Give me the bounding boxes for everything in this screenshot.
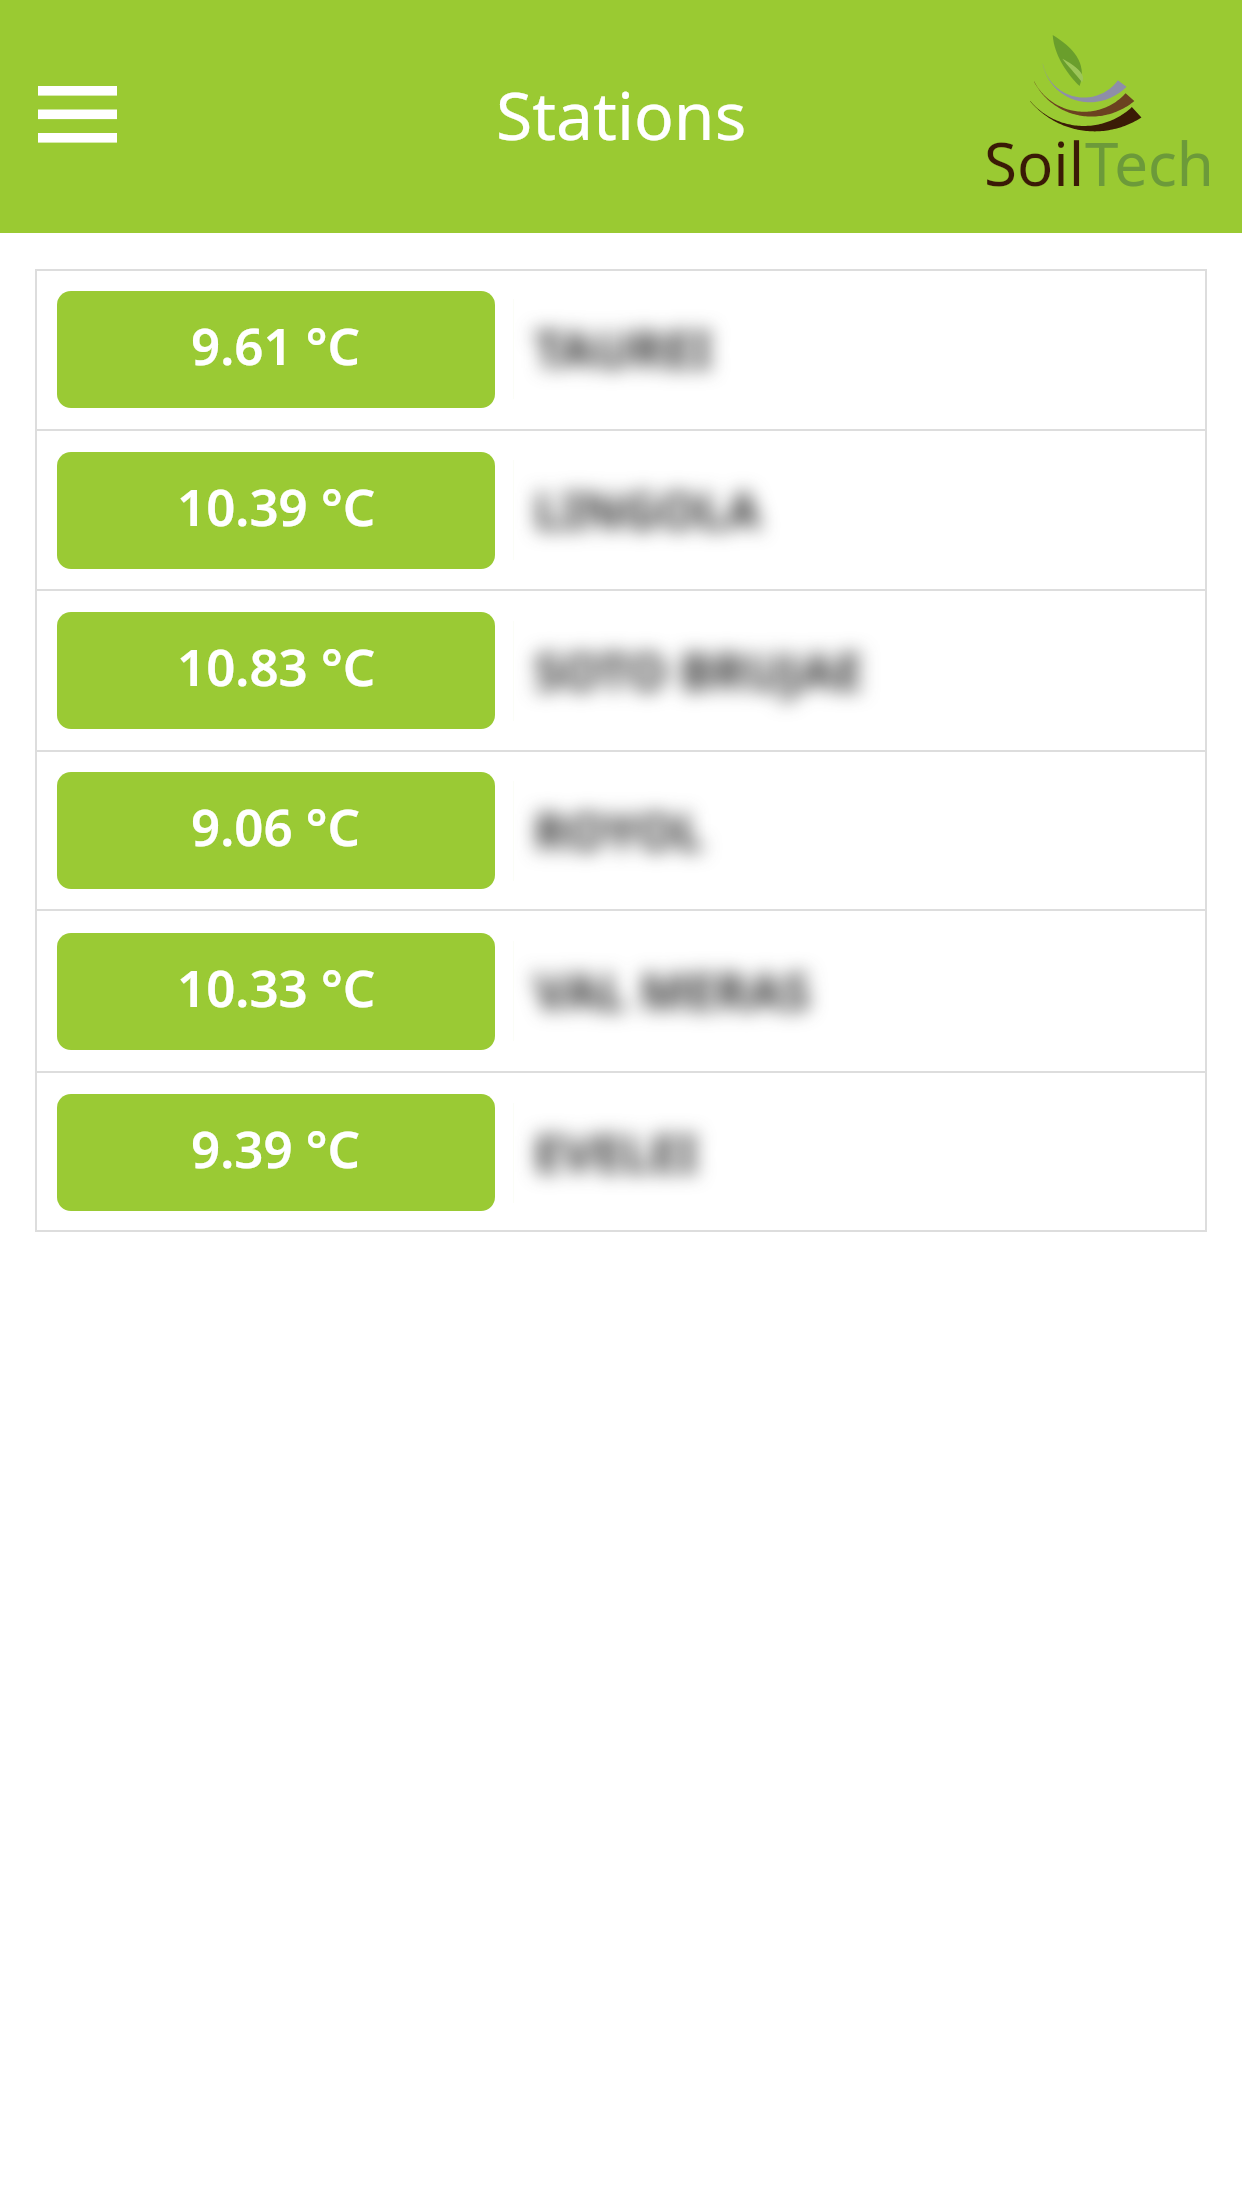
button[interactable]: 10.39 °C (35, 431, 1207, 589)
staticText: LINGOLA (534, 476, 761, 544)
staticText: VAL MERAS (534, 957, 811, 1025)
staticText: EVELEI (534, 1119, 698, 1187)
button[interactable]: 9.39 °C (57, 1094, 495, 1211)
staticText: 10.83 °C (177, 631, 376, 700)
button[interactable]: 10.33 °C (57, 933, 495, 1050)
button[interactable]: Open navigation menu (18, 55, 136, 173)
staticText: SOTO BRUJAE (534, 637, 863, 705)
button[interactable]: 10.39 °C (57, 452, 495, 569)
staticText: Stations (496, 69, 747, 159)
button[interactable]: 9.61 °C (57, 291, 495, 408)
button[interactable]: 9.61 °C (35, 269, 1207, 429)
staticText: 9.06 °C (191, 791, 361, 860)
staticText: TAUREI (534, 315, 712, 383)
button[interactable]: 9.06 °C (57, 772, 495, 889)
button[interactable]: 9.06 °C (35, 752, 1207, 909)
button[interactable]: 10.83 °C (57, 612, 495, 729)
button[interactable]: 10.83 °C (35, 591, 1207, 750)
staticText: 10.33 °C (177, 952, 376, 1021)
button[interactable]: 10.33 °C (35, 911, 1207, 1071)
staticText: ROYOL (534, 797, 704, 865)
button[interactable]: 9.39 °C (35, 1073, 1207, 1232)
staticText: Tech (1085, 122, 1214, 189)
staticText: 9.61 °C (191, 310, 361, 379)
staticText: 9.39 °C (191, 1113, 361, 1182)
staticText: Soil (984, 122, 1085, 189)
staticText: 10.39 °C (177, 471, 376, 540)
